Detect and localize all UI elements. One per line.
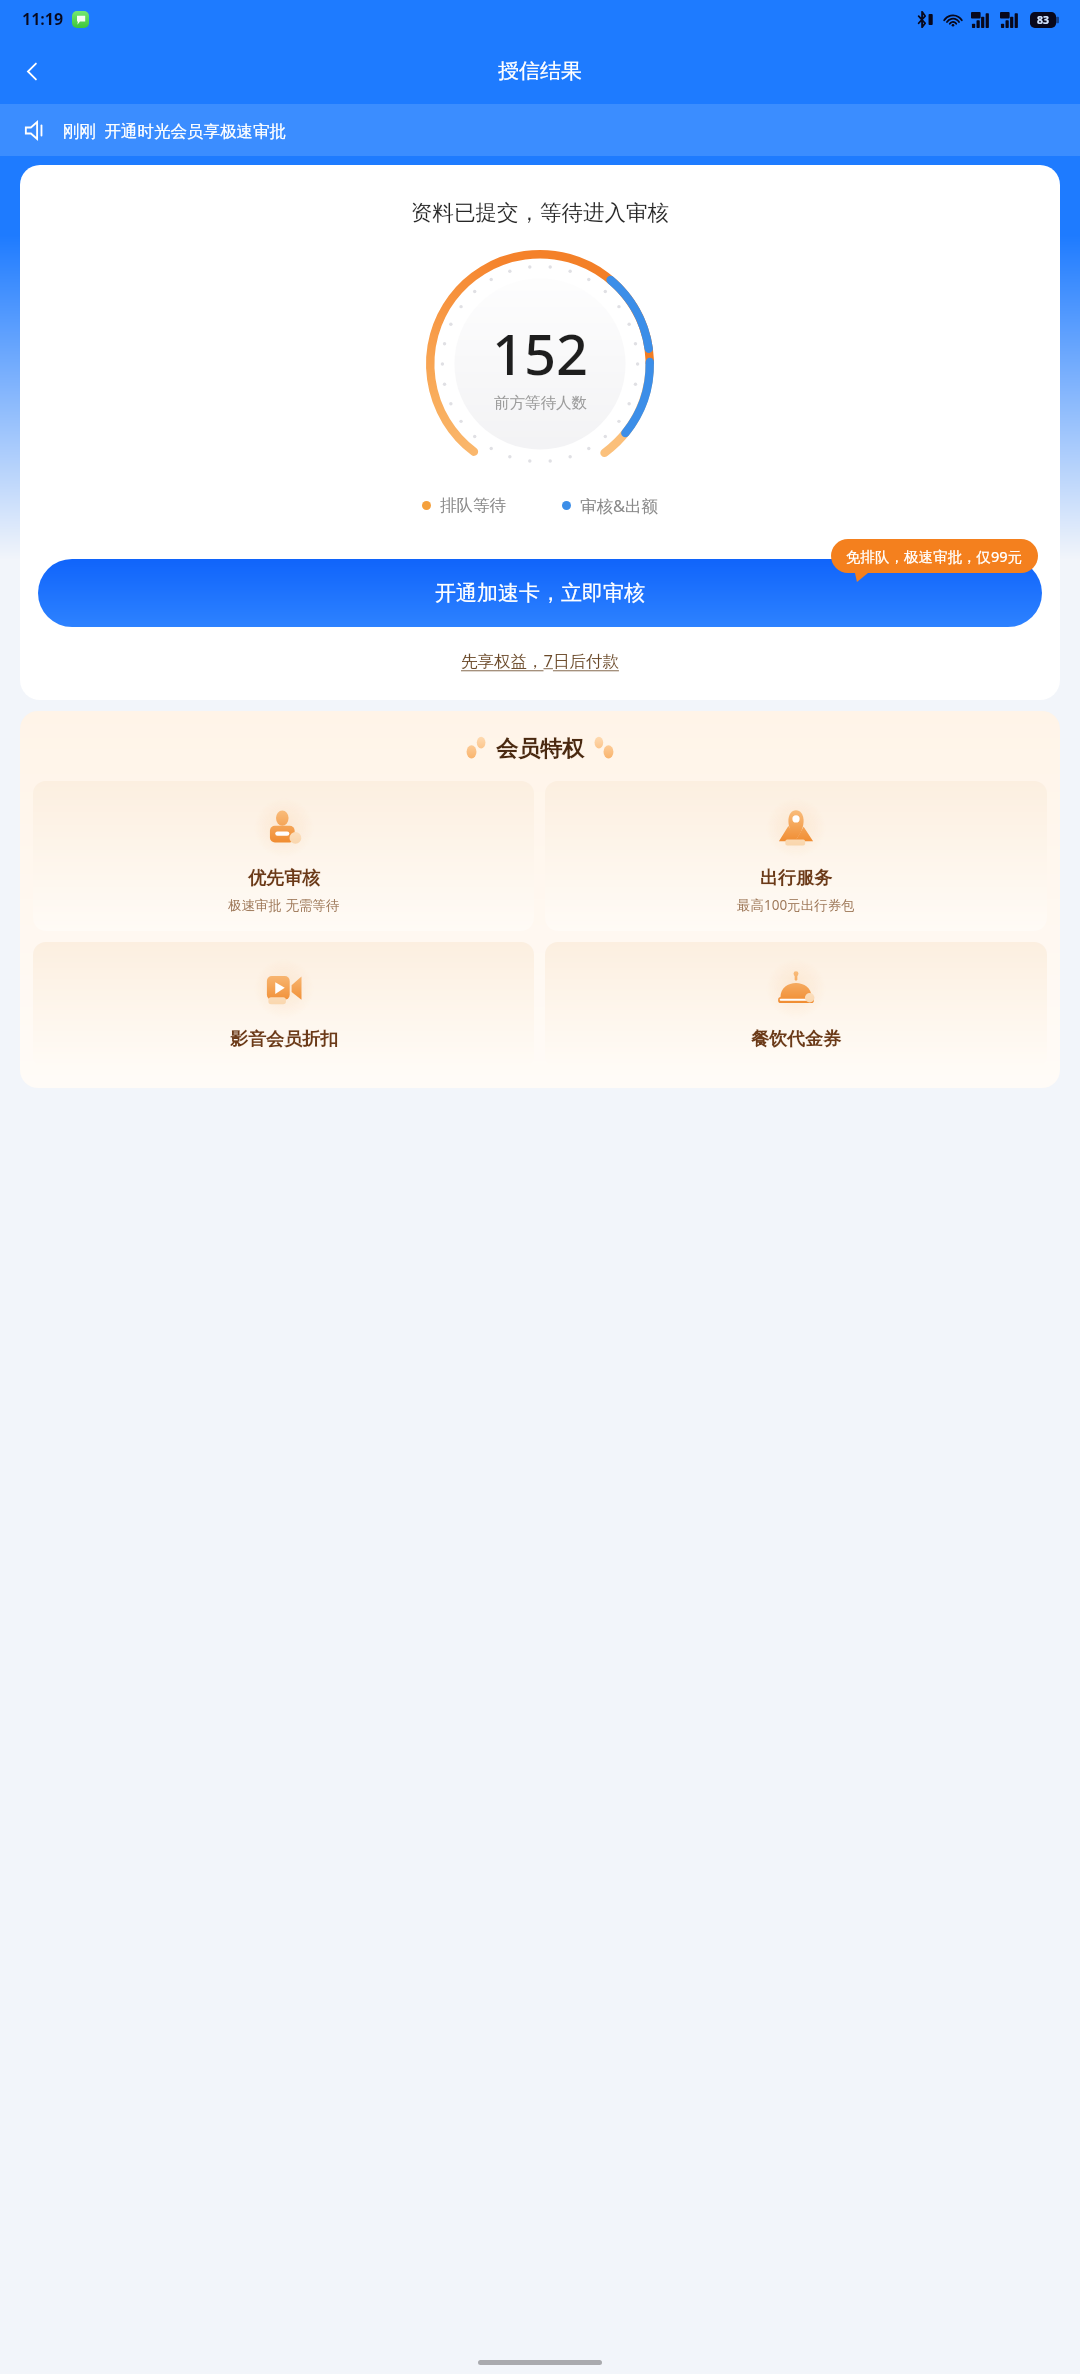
staticText: 先享权益，7日后付款 [461, 649, 619, 672]
staticText: 83 [1037, 13, 1050, 27]
button[interactable]: 先享权益，7日后付款 [455, 647, 625, 674]
button[interactable]: 优先审核 [33, 781, 534, 931]
staticText: 开通加速卡，立即审核 [435, 580, 645, 606]
staticText: 极速审批 无需等待 [228, 896, 340, 914]
button[interactable]: 影音会员折扣 [33, 942, 534, 1068]
button[interactable]: 免排队，极速审批，仅99元 [831, 539, 1038, 573]
button[interactable]: 餐饮代金券 [545, 942, 1047, 1068]
staticText: 刚刚 开通时光会员享极速审批 [63, 119, 287, 142]
button[interactable]: 刚刚 开通时光会员享极速审批 [0, 104, 1080, 156]
staticText: 资料已提交，等待进入审核 [411, 199, 669, 226]
staticText: 免排队，极速审批，仅99元 [846, 546, 1023, 566]
staticText: 出行服务 [760, 867, 832, 890]
staticText: 餐饮代金券 [751, 1028, 841, 1051]
staticText: 审核&出额 [580, 494, 659, 517]
staticText: 最高100元出行券包 [737, 896, 855, 914]
button[interactable]: 开通加速卡，立即审核 [38, 559, 1042, 627]
staticText: 11:19 [22, 8, 64, 30]
staticText: 排队等待 [440, 495, 506, 516]
button[interactable]: Back [8, 47, 56, 95]
staticText: 影音会员折扣 [230, 1028, 338, 1051]
staticText: 授信结果 [498, 58, 582, 84]
staticText: 152 [492, 315, 589, 391]
staticText: 前方等待人数 [494, 393, 587, 413]
staticText: 优先审核 [248, 867, 320, 890]
staticText: 会员特权 [496, 735, 584, 763]
button[interactable]: 出行服务 [545, 781, 1047, 931]
